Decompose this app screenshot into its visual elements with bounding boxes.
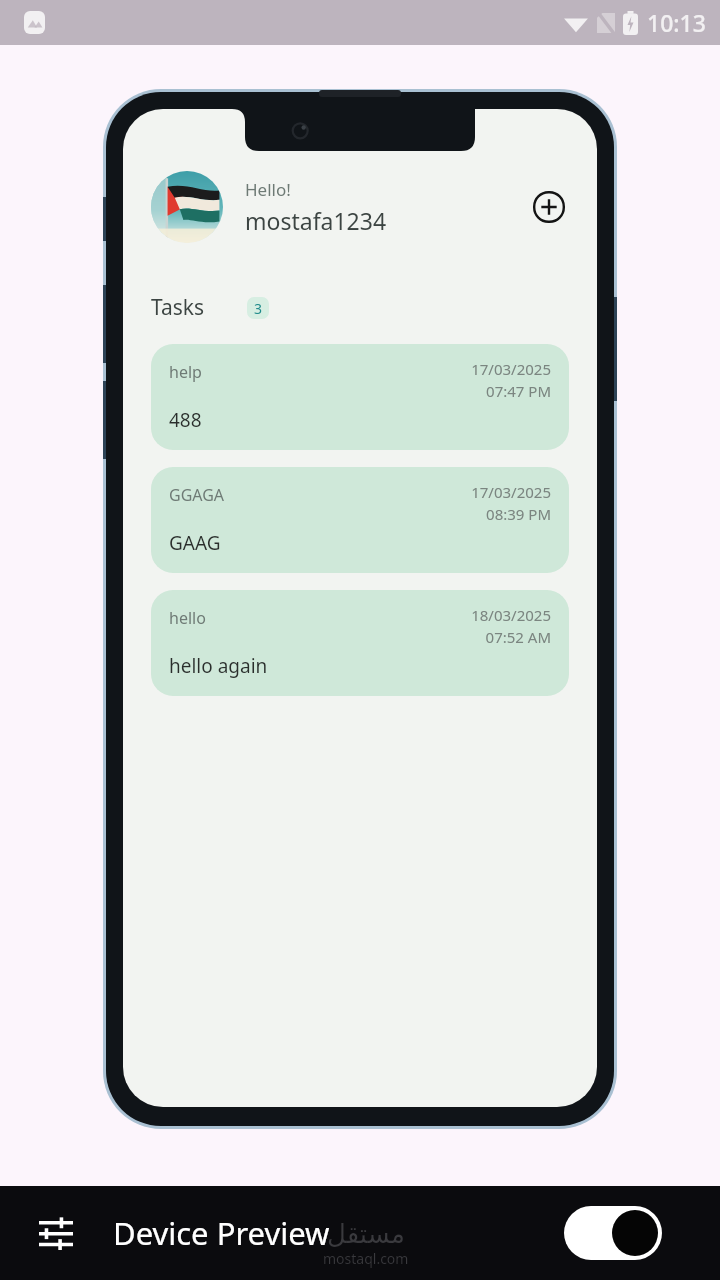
staticText: hello again <box>169 653 268 679</box>
staticText: 07:47 PM <box>486 381 551 401</box>
button[interactable]: help <box>151 344 569 450</box>
staticText: 08:39 PM <box>486 504 551 524</box>
staticText: 17/03/2025 <box>471 482 551 502</box>
staticText: hello <box>169 607 471 629</box>
staticText: mostaql.com <box>323 1249 409 1268</box>
staticText: 18/03/2025 <box>471 605 551 625</box>
staticText: 17/03/2025 <box>471 359 551 379</box>
staticText: mostafa1234 <box>245 205 387 236</box>
staticText: help <box>169 361 471 383</box>
staticText: Device Preview <box>113 1212 330 1254</box>
staticText: GGAGA <box>169 484 471 506</box>
staticText: Tasks <box>151 293 205 322</box>
staticText: GAAG <box>169 530 221 556</box>
button[interactable]: GGAGA <box>151 467 569 573</box>
button[interactable]: hello <box>151 590 569 696</box>
staticText: 07:52 AM <box>485 627 551 647</box>
staticText: 3 <box>254 299 263 318</box>
button[interactable]: Settings <box>30 1207 82 1259</box>
staticText: Hello! <box>245 178 291 201</box>
staticText: 10:13 <box>647 7 706 38</box>
staticText: مستقل <box>327 1219 405 1249</box>
button[interactable]: Toggle device preview <box>564 1206 662 1260</box>
button[interactable]: Add task <box>529 187 569 227</box>
staticText: 488 <box>169 407 202 433</box>
